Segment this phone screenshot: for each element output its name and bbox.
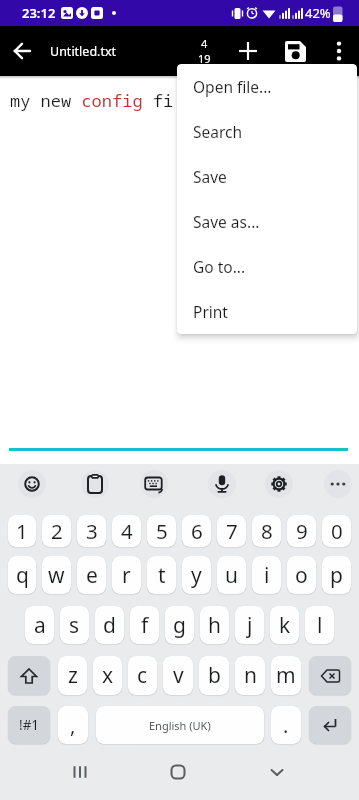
button[interactable]	[0, 29, 44, 73]
button[interactable]: h	[200, 606, 229, 644]
staticText: v	[173, 661, 184, 690]
staticText: Save	[193, 166, 227, 187]
staticText: Open file...	[193, 76, 272, 97]
button[interactable]: z	[58, 656, 87, 695]
button[interactable]: a	[25, 606, 54, 644]
staticText: my new config fi	[10, 89, 174, 112]
staticText: Save as...	[193, 211, 260, 232]
staticText: Print	[193, 301, 228, 322]
button[interactable]: Open file...	[177, 64, 357, 109]
button[interactable]: i	[252, 556, 281, 594]
staticText: .	[283, 712, 289, 739]
staticText: i	[264, 561, 270, 590]
staticText: g	[173, 611, 186, 640]
staticText: l	[317, 611, 323, 640]
button[interactable]: t	[147, 556, 176, 594]
button[interactable]: d	[95, 606, 124, 644]
button[interactable]: b	[199, 656, 229, 695]
button[interactable]: 0	[322, 515, 351, 547]
button[interactable]	[8, 656, 50, 695]
button[interactable]	[309, 706, 351, 744]
button[interactable]: 4	[112, 515, 141, 547]
staticText: 19	[198, 51, 211, 66]
button[interactable]: n	[235, 656, 265, 695]
button[interactable]: 3	[77, 515, 106, 547]
button[interactable]: p	[322, 556, 351, 594]
button[interactable]: s	[60, 606, 89, 644]
button[interactable]: c	[128, 656, 157, 695]
staticText: 23:12	[22, 4, 56, 22]
button[interactable]: Search	[177, 109, 357, 154]
staticText: k	[279, 611, 291, 640]
button[interactable]	[81, 470, 109, 498]
button[interactable]	[309, 656, 351, 695]
staticText: 0	[331, 517, 343, 545]
button[interactable]: Go to...	[177, 244, 357, 289]
button[interactable]	[227, 30, 269, 72]
button[interactable]: 2	[42, 515, 71, 547]
button[interactable]: Print	[177, 289, 357, 334]
button[interactable]: 7	[217, 515, 246, 547]
staticText: Go to...	[193, 256, 246, 277]
staticText: 3	[86, 517, 98, 545]
staticText: a	[34, 611, 46, 640]
button[interactable]: .	[271, 706, 301, 744]
button[interactable]	[265, 470, 293, 498]
staticText: 6	[191, 517, 203, 545]
button[interactable]	[18, 470, 46, 498]
button[interactable]: ,	[58, 706, 88, 744]
staticText: 4	[121, 517, 133, 545]
staticText: s	[69, 611, 80, 640]
button[interactable]: 5	[147, 515, 176, 547]
staticText: t	[158, 561, 166, 590]
button[interactable]: !#1	[8, 706, 50, 744]
staticText: z	[68, 661, 78, 690]
button[interactable]: e	[77, 556, 106, 594]
button[interactable]: f	[130, 606, 159, 644]
button[interactable]: m	[271, 656, 301, 695]
staticText: c	[137, 661, 148, 690]
button[interactable]: u	[217, 556, 246, 594]
button[interactable]: l	[305, 606, 334, 644]
button[interactable]	[208, 470, 236, 498]
button[interactable]: v	[163, 656, 193, 695]
button[interactable]	[319, 31, 359, 71]
button[interactable]	[140, 470, 168, 498]
button[interactable]: y	[182, 556, 211, 594]
button[interactable]: j	[235, 606, 264, 644]
staticText: o	[295, 561, 308, 590]
staticText: 4	[201, 36, 208, 51]
button[interactable]	[158, 752, 198, 792]
button[interactable]: x	[93, 656, 122, 695]
button[interactable]: k	[270, 606, 299, 644]
button[interactable]: 6	[182, 515, 211, 547]
button[interactable]: Save as...	[177, 199, 357, 244]
button[interactable]	[324, 470, 352, 498]
staticText: 2	[51, 517, 63, 545]
button[interactable]: English (UK)	[96, 706, 264, 744]
staticText: h	[208, 611, 221, 640]
staticText: 7	[226, 517, 238, 545]
button[interactable]: Save	[177, 154, 357, 199]
button[interactable]: 1	[8, 515, 36, 547]
button[interactable]: g	[165, 606, 194, 644]
staticText: Search	[193, 121, 243, 142]
button[interactable]: q	[8, 556, 36, 594]
button[interactable]: w	[42, 556, 71, 594]
button[interactable]: 8	[252, 515, 281, 547]
staticText: n	[244, 661, 257, 690]
staticText: ,	[70, 712, 76, 739]
staticText: !#1	[19, 716, 40, 734]
staticText: Untitled.txt	[50, 43, 117, 60]
button[interactable]: o	[287, 556, 316, 594]
button[interactable]	[60, 752, 100, 792]
staticText: 1	[16, 517, 28, 545]
staticText: 9	[296, 517, 308, 545]
button[interactable]: r	[112, 556, 141, 594]
button[interactable]	[274, 30, 316, 72]
staticText: 42%	[305, 4, 331, 22]
button[interactable]: 9	[287, 515, 316, 547]
staticText: q	[16, 561, 29, 590]
staticText: English (UK)	[149, 718, 211, 733]
button[interactable]	[257, 752, 297, 792]
